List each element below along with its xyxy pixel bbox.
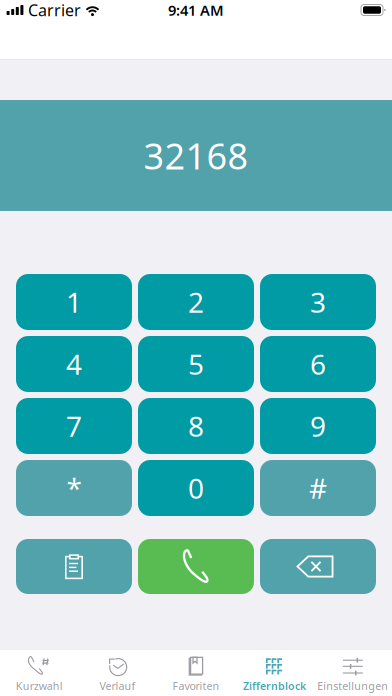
staticText: 3 [310,283,326,321]
staticText: 1 [66,283,82,321]
button[interactable]: * [16,460,132,516]
staticText: 9 [310,407,326,445]
button[interactable]: Einstellungen [314,648,392,696]
button[interactable]: Ziffernblock [235,648,314,696]
staticText: Carrier [28,0,81,21]
staticText: Verlauf [100,679,136,693]
staticText: Kurzwahl [16,679,63,693]
staticText: 0 [188,469,204,507]
button[interactable]: Einfügen [16,539,132,594]
button[interactable]: Verlauf [78,648,157,696]
staticText: 9:41 AM [168,0,224,20]
button[interactable]: Kurzwahl [0,648,78,696]
staticText: 7 [66,407,82,445]
button[interactable]: 0 [138,460,254,516]
staticText: # [309,469,327,507]
button[interactable]: 2 [138,274,254,330]
staticText: 6 [310,345,326,383]
button[interactable]: 5 [138,336,254,392]
button[interactable]: 6 [260,336,376,392]
button[interactable]: 4 [16,336,132,392]
staticText: Favoriten [172,679,219,693]
button[interactable]: Löschen [260,539,376,594]
staticText: 5 [188,345,204,383]
staticText: 32168 [143,132,248,179]
staticText: 2 [188,283,204,321]
button[interactable]: 1 [16,274,132,330]
staticText: 8 [188,407,204,445]
staticText: Einstellungen [317,679,388,693]
staticText: 4 [66,345,82,383]
staticText: * [66,469,81,507]
staticText: Ziffernblock [243,679,306,693]
button[interactable]: # [260,460,376,516]
button[interactable]: 8 [138,398,254,454]
button[interactable]: 9 [260,398,376,454]
button[interactable]: 3 [260,274,376,330]
button[interactable]: Anrufen [138,539,254,594]
button[interactable]: Favoriten [157,648,235,696]
button[interactable]: 7 [16,398,132,454]
